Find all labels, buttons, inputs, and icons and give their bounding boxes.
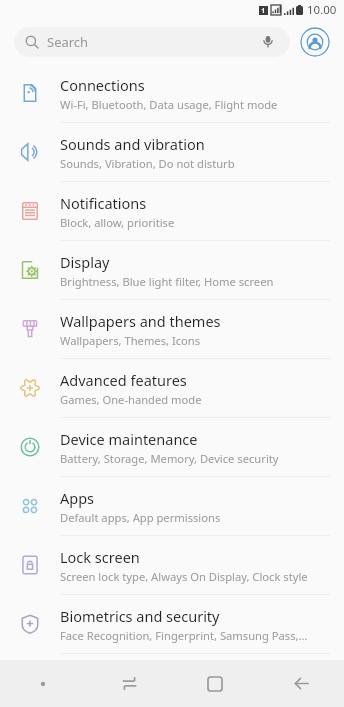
button[interactable]: Device maintenance — [0, 418, 344, 476]
button[interactable]: Voice search — [257, 31, 279, 53]
staticText: Connections — [60, 75, 145, 95]
button[interactable]: Hide navigation bar — [0, 660, 86, 707]
staticText: Lock screen — [60, 547, 140, 567]
staticText: Block, allow, prioritise — [60, 215, 175, 230]
staticText: 10.00 — [307, 2, 337, 18]
button[interactable]: Back — [258, 660, 344, 707]
staticText: Wallpapers, Themes, Icons — [60, 333, 201, 348]
staticText: Brightness, Blue light filter, Home scre… — [60, 274, 274, 289]
button[interactable]: Lock screen — [0, 536, 344, 594]
staticText: Sounds, Vibration, Do not disturb — [60, 156, 235, 171]
staticText: Display — [60, 252, 110, 272]
staticText: Wallpapers and themes — [60, 311, 221, 331]
button[interactable]: Advanced features — [0, 359, 344, 417]
staticText: Battery, Storage, Memory, Device securit… — [60, 451, 279, 466]
button[interactable]: Apps — [0, 477, 344, 535]
staticText: Face Recognition, Fingerprint, Samsung P… — [60, 628, 308, 643]
button[interactable]: Search — [14, 27, 290, 57]
button[interactable]: Connections — [0, 64, 344, 122]
button[interactable]: Recents — [86, 660, 172, 707]
button[interactable]: Notifications — [0, 182, 344, 240]
button[interactable]: Home — [172, 660, 258, 707]
staticText: Games, One-handed mode — [60, 392, 202, 407]
button[interactable]: Display — [0, 241, 344, 299]
staticText: Default apps, App permissions — [60, 510, 221, 525]
staticText: Apps — [60, 488, 95, 508]
staticText: Device maintenance — [60, 429, 198, 449]
staticText: Biometrics and security — [60, 606, 220, 626]
button[interactable]: Sounds and vibration — [0, 123, 344, 181]
staticText: Notifications — [60, 193, 147, 213]
staticText: Search — [47, 33, 257, 51]
button[interactable]: Wallpapers and themes — [0, 300, 344, 358]
staticText: Advanced features — [60, 370, 187, 390]
button[interactable]: Biometrics and security — [0, 595, 344, 653]
staticText: Screen lock type, Always On Display, Clo… — [60, 569, 308, 584]
staticText: Wi-Fi, Bluetooth, Data usage, Flight mod… — [60, 97, 278, 112]
staticText: Sounds and vibration — [60, 134, 205, 154]
button[interactable]: Account — [300, 27, 330, 57]
